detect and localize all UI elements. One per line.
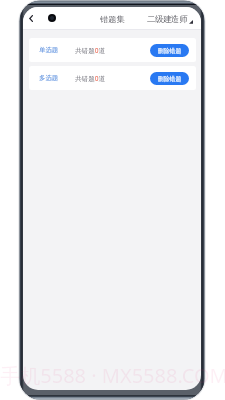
button[interactable]: 多选题: [29, 66, 196, 90]
staticText: 删除错题: [158, 75, 182, 82]
button[interactable]: Back: [25, 12, 37, 24]
staticText: 单选题: [39, 46, 59, 54]
button[interactable]: 二级建造师: [147, 14, 193, 25]
staticText: 删除错题: [158, 47, 182, 54]
staticText: 多选题: [39, 74, 59, 82]
button[interactable]: 删除错题: [150, 72, 189, 85]
staticText: 手机5588 · MX5588.COM: [0, 362, 225, 389]
button[interactable]: 删除错题: [150, 44, 189, 57]
staticText: 错题集: [100, 14, 125, 24]
button[interactable]: 单选题: [29, 38, 196, 62]
staticText: 二级建造师: [147, 14, 188, 25]
staticText: 共错题0道: [75, 74, 106, 83]
staticText: 共错题0道: [75, 46, 106, 55]
